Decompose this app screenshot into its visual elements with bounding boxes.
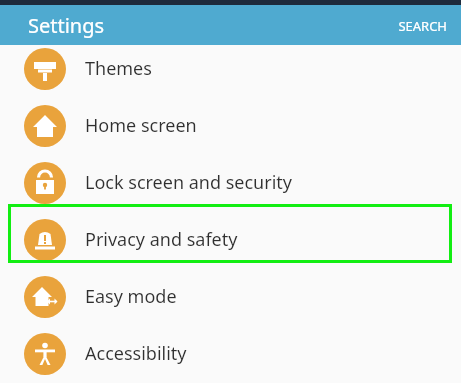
- button[interactable]: Lock screen and security: [0, 154, 461, 211]
- button[interactable]: Themes: [0, 40, 461, 97]
- button[interactable]: Privacy and safety: [0, 211, 461, 268]
- button[interactable]: SEARCH: [384, 11, 461, 41]
- button[interactable]: Home screen: [0, 97, 461, 154]
- staticText: Easy mode: [85, 284, 177, 309]
- staticText: Home screen: [85, 113, 197, 138]
- staticText: Privacy and safety: [85, 227, 238, 252]
- button[interactable]: Easy mode: [0, 268, 461, 325]
- staticText: Lock screen and security: [85, 170, 292, 195]
- staticText: Settings: [28, 12, 105, 39]
- staticText: Themes: [85, 56, 152, 81]
- staticText: Accessibility: [85, 341, 187, 366]
- button[interactable]: Accessibility: [0, 325, 461, 382]
- staticText: SEARCH: [398, 17, 447, 35]
